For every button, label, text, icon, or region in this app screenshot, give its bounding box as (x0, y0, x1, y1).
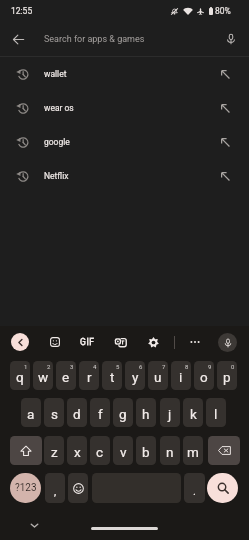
button[interactable]: n (160, 436, 180, 465)
staticText: ?123 (15, 482, 37, 494)
button[interactable]: z (44, 436, 64, 465)
button[interactable]: y (125, 361, 145, 390)
button[interactable]: Hide keyboard (25, 516, 43, 534)
button[interactable]: f (90, 398, 110, 427)
staticText: Search for apps & games (44, 34, 145, 45)
staticText: 3 (70, 363, 74, 370)
button[interactable]: p (217, 361, 237, 390)
button[interactable]: Use suggestion Netflix (209, 159, 249, 193)
button[interactable]: Backspace (208, 436, 240, 465)
staticText: w (38, 369, 49, 385)
staticText: g (119, 406, 127, 422)
button[interactable]: wear os (0, 91, 249, 125)
staticText: q (16, 369, 24, 385)
staticText: h (142, 406, 150, 422)
staticText: Netflix (44, 171, 209, 181)
button[interactable]: l (206, 398, 226, 427)
button[interactable]: GIF (76, 331, 98, 353)
staticText: m (187, 444, 199, 460)
staticText: n (166, 444, 174, 460)
button[interactable]: Emoji (68, 473, 88, 503)
staticText: p (223, 369, 231, 385)
button[interactable]: q (10, 361, 30, 390)
button[interactable]: x (67, 436, 87, 465)
staticText: t (110, 369, 115, 385)
staticText: 0 (231, 363, 235, 370)
staticText: . (193, 485, 196, 498)
staticText: google (44, 137, 209, 147)
button[interactable]: g (113, 398, 133, 427)
button[interactable]: google (0, 125, 249, 159)
button[interactable]: More options (184, 331, 206, 353)
button[interactable]: Search (207, 473, 238, 503)
staticText: 12:55 (11, 6, 33, 16)
staticText: 5 (116, 363, 120, 370)
button[interactable]: w (33, 361, 53, 390)
button[interactable]: d (67, 398, 87, 427)
staticText: wallet (44, 69, 209, 79)
button[interactable]: Use suggestion wallet (209, 57, 249, 91)
button[interactable]: v (113, 436, 133, 465)
button[interactable]: t (102, 361, 122, 390)
button[interactable]: Use suggestion google (209, 125, 249, 159)
staticText: 6 (139, 363, 143, 370)
staticText: y (132, 369, 139, 385)
staticText: r (87, 369, 92, 385)
button[interactable]: o (194, 361, 214, 390)
staticText: u (154, 369, 162, 385)
button[interactable]: b (136, 436, 156, 465)
button[interactable]: r (79, 361, 99, 390)
button[interactable]: m (183, 436, 203, 465)
staticText: d (73, 406, 81, 422)
staticText: v (120, 444, 127, 460)
button[interactable]: Shift (10, 436, 42, 465)
staticText: i (179, 369, 183, 385)
staticText: k (190, 406, 197, 422)
button[interactable]: i (171, 361, 191, 390)
staticText: wear os (44, 103, 209, 113)
staticText: z (51, 444, 58, 460)
staticText: e (62, 369, 70, 385)
button[interactable]: Settings (142, 331, 164, 353)
staticText: l (214, 406, 218, 422)
staticText: 2 (47, 363, 51, 370)
button[interactable]: Period (184, 473, 205, 503)
button[interactable]: s (44, 398, 64, 427)
button[interactable]: wallet (0, 57, 249, 91)
button[interactable]: Netflix (0, 159, 249, 193)
button[interactable]: ?123 (10, 473, 41, 503)
button[interactable]: j (160, 398, 180, 427)
staticText: 8 (185, 363, 189, 370)
button[interactable]: a (21, 398, 41, 427)
button[interactable]: u (148, 361, 168, 390)
staticText: 9 (208, 363, 212, 370)
button[interactable]: Translate (109, 331, 131, 353)
staticText: s (51, 406, 58, 422)
staticText: GIF (80, 337, 95, 347)
button[interactable]: Voice input (218, 333, 237, 352)
staticText: j (168, 406, 172, 422)
button[interactable]: h (136, 398, 156, 427)
button[interactable]: c (90, 436, 110, 465)
staticText: a (27, 406, 35, 422)
button[interactable]: Voice search (217, 25, 245, 53)
staticText: x (74, 444, 81, 460)
staticText: 4 (93, 363, 97, 370)
button[interactable]: e (56, 361, 76, 390)
staticText: 80% (215, 6, 231, 16)
button[interactable]: Back (11, 333, 29, 351)
staticText: , (54, 485, 57, 498)
staticText: f (98, 406, 103, 422)
button[interactable]: Use suggestion wear os (209, 91, 249, 125)
button[interactable]: Comma (45, 473, 65, 503)
staticText: o (200, 369, 208, 385)
staticText: 7 (162, 363, 166, 370)
button[interactable]: Back (4, 25, 32, 53)
staticText: b (142, 444, 150, 460)
button[interactable]: Stickers (44, 331, 66, 353)
staticText: c (96, 444, 104, 460)
button[interactable]: k (183, 398, 203, 427)
staticText: 1 (24, 363, 28, 370)
